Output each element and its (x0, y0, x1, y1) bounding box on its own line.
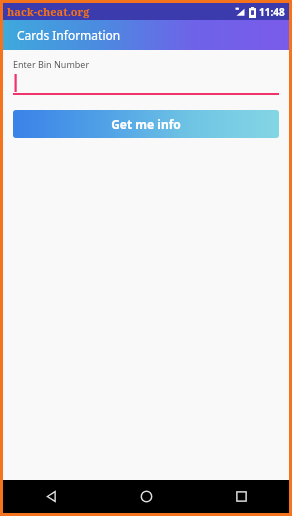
staticText: Get me info (111, 116, 181, 132)
button[interactable]: Get me info (13, 110, 279, 138)
staticText: Cards Information (17, 27, 121, 43)
staticText: hack-cheat.org (7, 4, 90, 19)
staticText: 11:48 (259, 5, 285, 19)
staticText: Enter Bin Number (13, 58, 90, 70)
button[interactable]: Back (3, 480, 99, 513)
button[interactable]: Home (99, 480, 194, 513)
button[interactable]: Recent apps (194, 480, 289, 513)
button[interactable] (13, 74, 279, 95)
